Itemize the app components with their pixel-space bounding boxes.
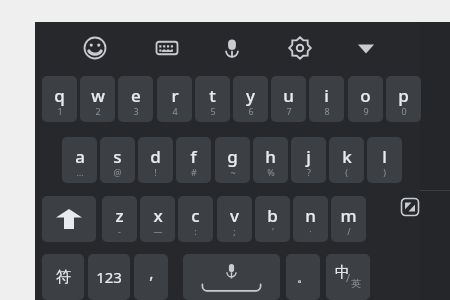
button[interactable]: a (62, 137, 97, 183)
button[interactable]: z (102, 196, 137, 242)
button[interactable]: m (331, 196, 366, 242)
staticText: : (194, 225, 197, 237)
button[interactable]: v (217, 196, 252, 242)
button[interactable]: Voice input (219, 35, 245, 61)
staticText: · (309, 225, 312, 237)
staticText: 英 (351, 277, 361, 290)
button[interactable]: h (253, 137, 288, 183)
staticText: a (75, 145, 85, 168)
staticText: — (153, 225, 163, 237)
staticText: u (283, 84, 294, 107)
button[interactable]: 。 (286, 254, 320, 300)
staticText: x (153, 204, 163, 227)
staticText: ( (345, 166, 348, 178)
button[interactable]: n (293, 196, 328, 242)
staticText: 0 (401, 105, 407, 117)
staticText: j (306, 145, 311, 168)
staticText: 123 (96, 267, 122, 287)
staticText: ~ (230, 166, 236, 178)
button[interactable]: Switch keyboard (154, 35, 180, 61)
staticText: y (246, 84, 255, 107)
button[interactable]: e (118, 76, 153, 122)
staticText: ; (233, 225, 236, 237)
staticText: 2 (95, 105, 101, 117)
staticText: 8 (324, 105, 330, 117)
button[interactable]: Emoji (82, 35, 108, 61)
staticText: / (347, 225, 351, 237)
staticText: 6 (248, 105, 254, 117)
button[interactable]: 中 (326, 254, 370, 300)
button[interactable]: x (140, 196, 175, 242)
button[interactable]: Shift (42, 196, 96, 242)
button[interactable]: f (176, 137, 211, 183)
staticText: ) (383, 166, 386, 178)
staticText: e (131, 84, 141, 107)
button[interactable]: Hide keyboard (353, 36, 379, 62)
staticText: h (265, 145, 276, 168)
staticText: l (382, 145, 387, 168)
staticText: ’ (272, 225, 274, 237)
staticText: , (149, 262, 154, 284)
button[interactable]: 符 (42, 254, 84, 300)
staticText: % (267, 166, 275, 178)
button[interactable]: 123 (88, 254, 130, 300)
staticText: o (360, 84, 371, 107)
staticText: d (150, 145, 161, 168)
staticText: r (171, 84, 179, 107)
staticText: 7 (286, 105, 292, 117)
staticText: i (324, 84, 329, 107)
staticText: t (209, 84, 216, 107)
staticText: … (76, 166, 84, 178)
button[interactable]: k (329, 137, 364, 183)
staticText: g (227, 145, 238, 168)
button[interactable]: o (348, 76, 383, 122)
button[interactable]: r (157, 76, 192, 122)
button[interactable]: p (386, 76, 421, 122)
staticText: 5 (210, 105, 216, 117)
staticText: m (340, 204, 357, 227)
staticText: c (191, 204, 200, 227)
button[interactable]: j (291, 137, 326, 183)
button[interactable]: q (42, 76, 77, 122)
staticText: b (267, 204, 278, 227)
staticText: k (342, 145, 352, 168)
staticText: z (115, 204, 124, 227)
staticText: n (305, 204, 316, 227)
button[interactable]: u (271, 76, 306, 122)
button[interactable]: i (309, 76, 344, 122)
staticText: 9 (363, 105, 369, 117)
staticText: p (398, 84, 409, 107)
staticText: q (54, 84, 65, 107)
staticText: 。 (297, 269, 310, 285)
button[interactable]: d (138, 137, 173, 183)
button[interactable]: t (195, 76, 230, 122)
staticText: - (118, 225, 121, 237)
staticText: v (230, 204, 239, 227)
button[interactable]: g (215, 137, 250, 183)
button[interactable]: Resize keyboard (399, 196, 421, 218)
button[interactable]: c (178, 196, 213, 242)
staticText: f (190, 145, 197, 168)
staticText: / (346, 270, 351, 285)
staticText: 3 (133, 105, 139, 117)
button[interactable]: , (134, 254, 168, 300)
staticText: 4 (172, 105, 178, 117)
staticText: w (91, 84, 105, 107)
button[interactable]: y (233, 76, 268, 122)
button[interactable]: Settings (287, 35, 313, 61)
button[interactable]: w (80, 76, 115, 122)
button[interactable]: l (367, 137, 402, 183)
staticText: ? (307, 166, 311, 178)
staticText: @ (113, 166, 122, 178)
staticText: 1 (57, 105, 63, 117)
button[interactable]: s (100, 137, 135, 183)
staticText: 符 (56, 268, 71, 287)
staticText: 中 (335, 263, 350, 282)
staticText: s (113, 145, 122, 168)
button[interactable]: b (255, 196, 290, 242)
staticText: # (191, 166, 197, 178)
button[interactable]: Space (183, 254, 280, 300)
staticText: ! (154, 166, 157, 178)
